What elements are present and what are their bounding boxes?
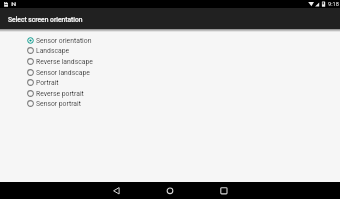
- button[interactable]: Back: [109, 183, 124, 198]
- button[interactable]: Reverse portrait: [0, 88, 340, 99]
- staticText: Reverse landscape: [36, 58, 93, 66]
- staticText: Landscape: [36, 47, 70, 55]
- staticText: Sensor landscape: [36, 69, 90, 77]
- button[interactable]: Sensor landscape: [0, 67, 340, 78]
- staticText: Select screen orientation: [8, 16, 83, 24]
- button[interactable]: Reverse landscape: [0, 56, 340, 67]
- button[interactable]: Sensor portrait: [0, 98, 340, 109]
- button[interactable]: Portrait: [0, 77, 340, 88]
- button[interactable]: Landscape: [0, 45, 340, 56]
- staticText: 9:18: [328, 1, 339, 8]
- button[interactable]: Home: [162, 183, 177, 198]
- staticText: Sensor portrait: [36, 100, 81, 108]
- staticText: Portrait: [36, 79, 59, 87]
- button[interactable]: Recent apps: [216, 183, 231, 198]
- staticText: Reverse portrait: [36, 90, 84, 98]
- staticText: Sensor orientation: [36, 37, 92, 45]
- button[interactable]: Sensor orientation: [0, 35, 340, 46]
